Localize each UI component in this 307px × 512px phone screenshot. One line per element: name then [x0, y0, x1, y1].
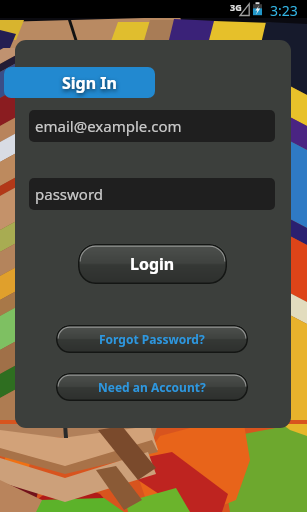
- button[interactable]: Login: [78, 244, 227, 284]
- button[interactable]: password: [29, 178, 275, 210]
- button[interactable]: email@example.com: [29, 110, 275, 142]
- button[interactable]: Sign In: [4, 67, 155, 98]
- staticText: Login: [130, 253, 175, 275]
- staticText: email@example.com: [35, 116, 182, 136]
- staticText: password: [35, 184, 103, 204]
- staticText: 3G: [230, 1, 242, 13]
- staticText: Forgot Password?: [99, 331, 205, 347]
- staticText: Sign In: [62, 72, 117, 94]
- button[interactable]: Forgot Password?: [56, 325, 248, 353]
- staticText: Need an Account?: [98, 379, 206, 395]
- button[interactable]: Need an Account?: [56, 373, 248, 401]
- staticText: 3:23: [270, 1, 298, 19]
